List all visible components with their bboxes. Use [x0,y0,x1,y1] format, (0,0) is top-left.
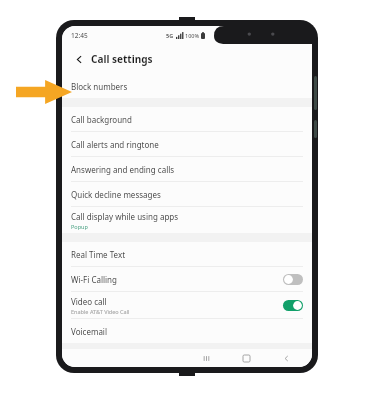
staticText: Real Time Text [71,249,126,260]
staticText: 12:45 [71,31,88,40]
button[interactable]: Recents [186,349,226,367]
staticText: Call settings [91,52,153,66]
staticText: Popup [71,223,88,230]
button[interactable]: Back [71,51,87,67]
staticText: Block numbers [71,81,128,92]
staticText: Voicemail [71,326,107,337]
button[interactable]: Call display while using apps [62,207,312,233]
staticText: 100% [185,32,200,39]
staticText: Wi-Fi Calling [71,274,117,285]
button[interactable]: Wi-Fi Calling [62,267,312,292]
staticText: Enable AT&T Video Call [71,308,130,315]
staticText: Call background [71,114,132,125]
button[interactable]: Call alerts and ringtone [62,132,312,157]
button[interactable]: Answering and ending calls [62,157,312,182]
button[interactable]: Video call [62,292,312,319]
staticText: Call alerts and ringtone [71,139,159,150]
staticText: Answering and ending calls [71,164,175,175]
button[interactable]: Toggle off [283,274,303,285]
staticText: Video call [71,296,107,307]
button[interactable]: Home [226,349,266,367]
other: Annotation arrow pointing to Block numbe… [16,80,72,104]
button[interactable]: Voicemail [62,319,312,343]
button[interactable]: Block numbers [62,74,312,98]
button[interactable]: Call background [62,107,312,132]
staticText: 5G [166,32,174,39]
button[interactable]: Real Time Text [62,242,312,267]
staticText: Quick decline messages [71,189,161,200]
button[interactable]: Toggle on [283,300,303,311]
staticText: Call display while using apps [71,211,179,222]
button[interactable]: Quick decline messages [62,182,312,207]
button[interactable]: Back [266,349,306,367]
